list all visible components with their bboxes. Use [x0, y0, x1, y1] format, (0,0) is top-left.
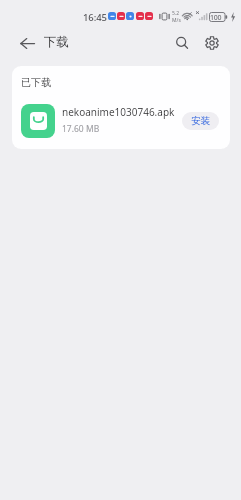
staticText: 已下载 — [21, 76, 51, 89]
button[interactable]: Search — [169, 30, 195, 56]
staticText: nekoanime1030746.apk — [62, 105, 175, 119]
staticText: 安装 — [191, 115, 210, 127]
button[interactable]: 安装 — [182, 112, 219, 130]
button[interactable]: Settings — [199, 30, 225, 56]
staticText: 16:45 — [83, 11, 107, 24]
staticText: 下载 — [44, 34, 69, 50]
staticText: 100 — [210, 13, 222, 23]
staticText: 5.2 — [172, 10, 180, 17]
staticText: 17.60 MB — [62, 123, 100, 135]
button[interactable] — [12, 98, 230, 149]
button[interactable]: Back — [10, 31, 44, 55]
staticText: M/s — [172, 17, 181, 24]
